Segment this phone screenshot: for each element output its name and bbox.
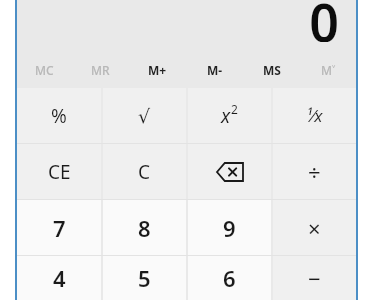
staticText: CE — [48, 159, 71, 185]
staticText: 4 — [53, 263, 66, 293]
button[interactable]: % — [17, 88, 101, 143]
button[interactable]: C — [103, 144, 186, 199]
button[interactable]: 9 — [188, 200, 271, 255]
button[interactable]: MR — [72, 56, 129, 84]
staticText: √ — [138, 105, 151, 127]
button[interactable]: Backspace — [188, 144, 271, 199]
button[interactable]: M- — [186, 56, 243, 84]
staticText: M+ — [148, 62, 167, 78]
button[interactable]: x — [188, 88, 271, 143]
button[interactable]: M+ — [129, 56, 186, 84]
staticText: 9 — [223, 213, 236, 243]
button[interactable]: 7 — [17, 200, 101, 255]
staticText: M- — [207, 62, 223, 78]
button[interactable]: M˅ — [300, 56, 357, 84]
button[interactable]: 6 — [188, 256, 271, 300]
staticText: MC — [35, 62, 54, 78]
staticText: C — [138, 159, 151, 185]
staticText: MS — [263, 62, 281, 78]
staticText: 6 — [223, 263, 236, 293]
staticText: MR — [91, 62, 110, 78]
staticText: M˅ — [321, 62, 336, 78]
button[interactable]: CE — [17, 144, 101, 199]
button[interactable]: MS — [243, 56, 300, 84]
staticText: ¹⁄x — [306, 104, 323, 127]
button[interactable]: − — [273, 256, 356, 300]
button[interactable]: 8 — [103, 200, 186, 255]
staticText: 8 — [138, 213, 151, 243]
staticText: % — [51, 103, 67, 129]
button[interactable]: MC — [16, 56, 72, 84]
button[interactable]: 5 — [103, 256, 186, 300]
button[interactable]: ÷ — [273, 144, 356, 199]
staticText: x — [221, 103, 231, 129]
button[interactable]: √ — [103, 88, 186, 143]
staticText: 2 — [231, 101, 238, 117]
staticText: 5 — [138, 263, 151, 293]
staticText: × — [308, 213, 321, 243]
button[interactable]: × — [273, 200, 356, 255]
staticText: ÷ — [308, 157, 321, 187]
staticText: 7 — [53, 213, 66, 243]
button[interactable]: 4 — [17, 256, 101, 300]
staticText: 0 — [309, 0, 339, 42]
button[interactable]: ¹⁄x — [273, 88, 356, 143]
staticText: − — [308, 263, 321, 293]
